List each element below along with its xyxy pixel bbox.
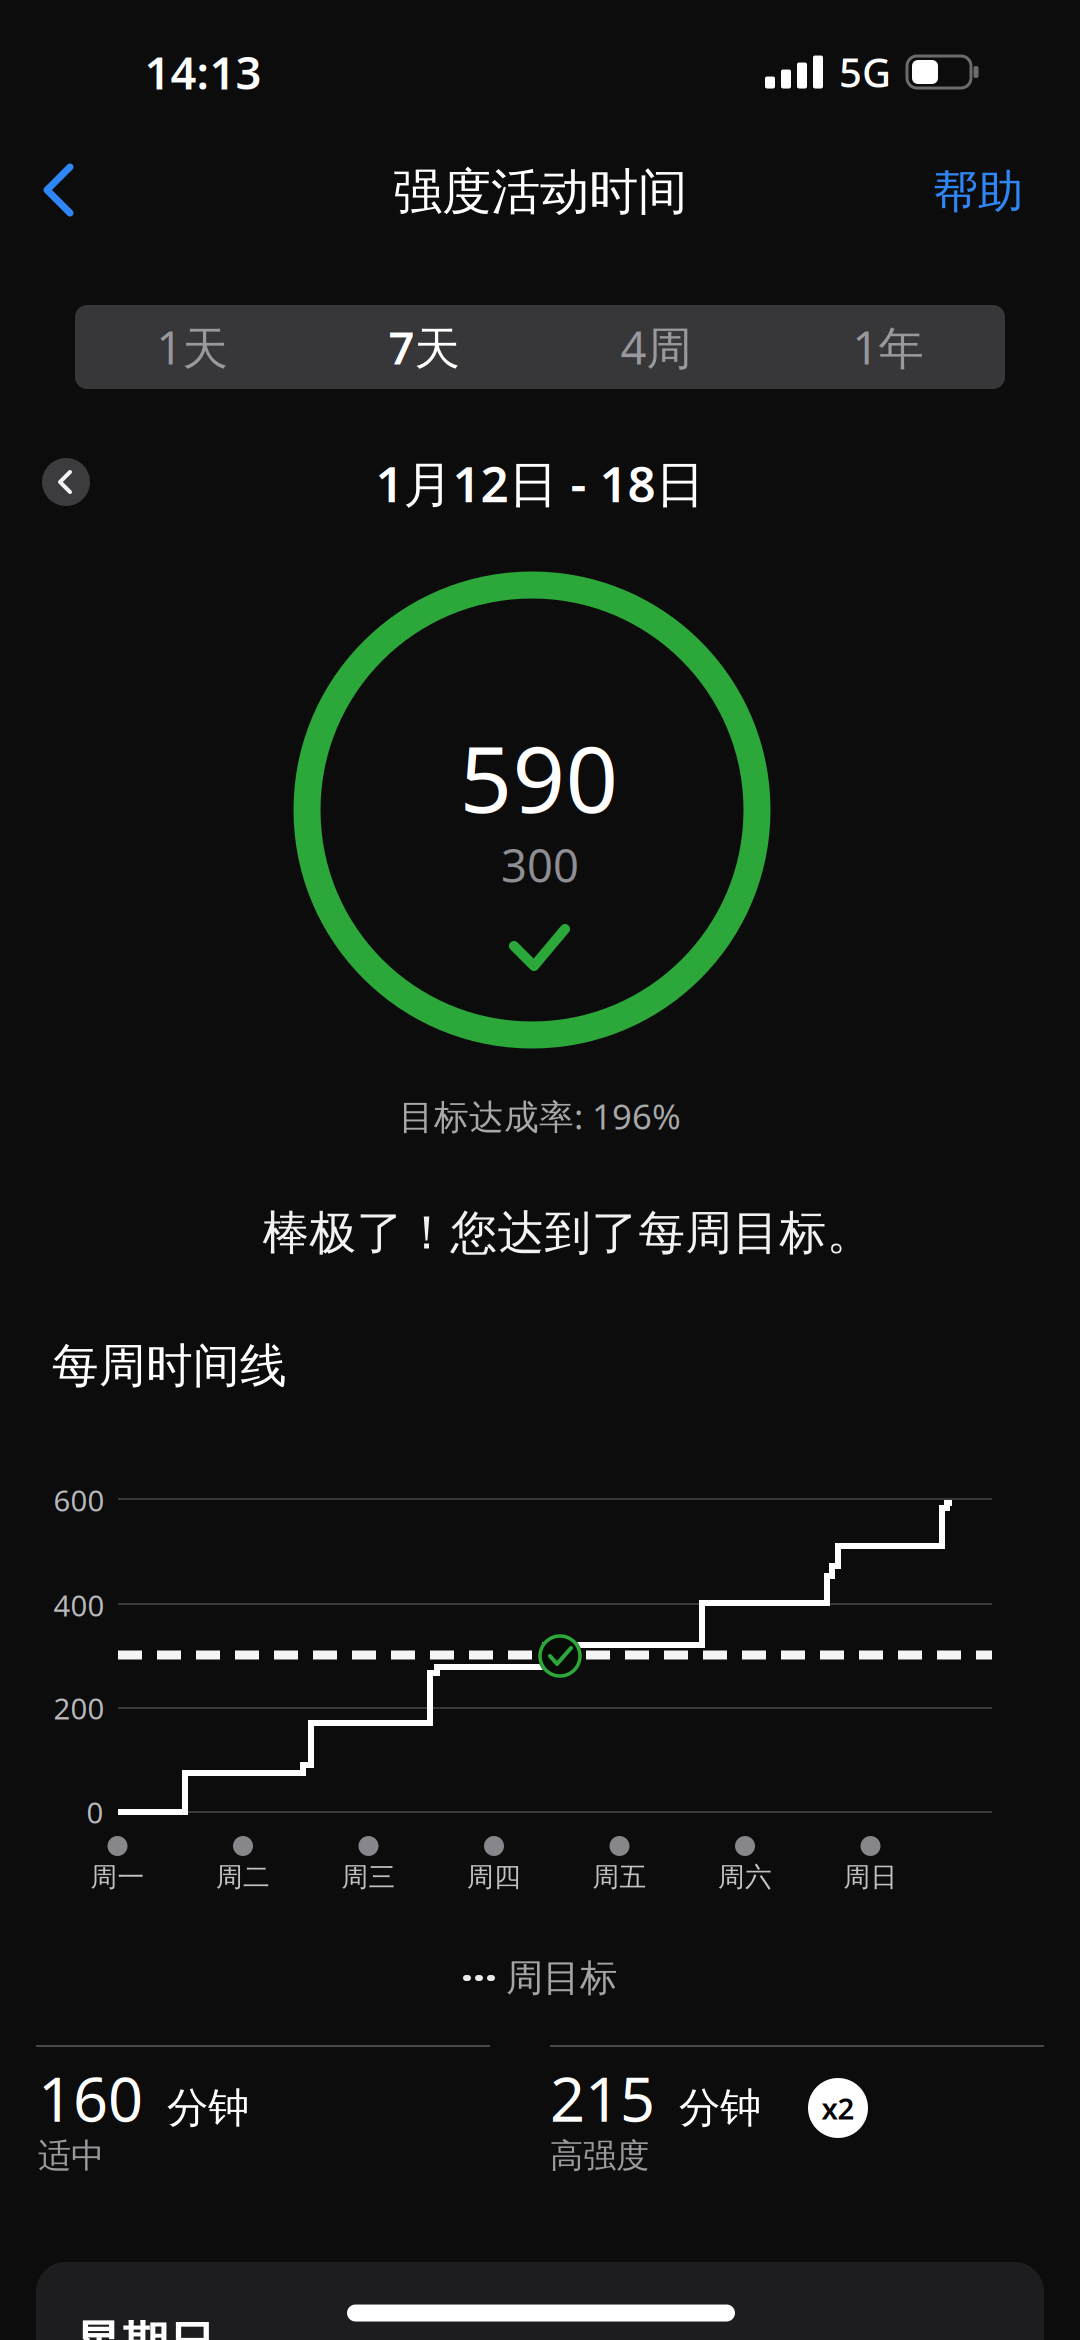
staticText: 帮助 (933, 164, 1023, 220)
staticText: 160 (38, 2057, 143, 2139)
staticText: 14:13 (144, 42, 261, 102)
staticText: 分钟 (679, 2083, 761, 2133)
staticText: 600 (53, 1480, 104, 1519)
staticText: 周一 (90, 1861, 144, 1893)
staticText: 分钟 (167, 2083, 249, 2133)
staticText: 棒极了！您达到了每周目标。 (262, 1204, 873, 1262)
staticText: 4周 (620, 317, 691, 377)
button[interactable]: 1天 (76, 305, 308, 389)
staticText: 1月12日 - 18日 (375, 450, 704, 516)
button[interactable]: 1年 (772, 305, 1004, 389)
staticText: 周二 (216, 1861, 270, 1893)
staticText: x2 (821, 2088, 854, 2127)
staticText: 1年 (852, 317, 923, 377)
staticText: 400 (53, 1585, 104, 1624)
staticText: 200 (53, 1688, 104, 1727)
staticText: 适中 (38, 2135, 104, 2176)
button[interactable]: 上一周 (42, 458, 90, 506)
staticText: 周日 (843, 1861, 897, 1893)
staticText: 300 (501, 835, 579, 895)
staticText: 周目标 (506, 1955, 617, 2001)
button[interactable]: 4周 (540, 305, 772, 389)
button[interactable]: 7天 (308, 305, 540, 389)
button[interactable]: 帮助 (913, 157, 1043, 227)
staticText: 周六 (718, 1861, 772, 1893)
staticText: 周三 (341, 1861, 395, 1893)
staticText: 590 (459, 716, 618, 838)
staticText: 高强度 (550, 2135, 649, 2176)
staticText: 目标达成率: 196% (399, 1093, 681, 1139)
staticText: 周四 (467, 1861, 521, 1893)
staticText: 强度活动时间 (393, 162, 687, 222)
staticText: 1天 (156, 317, 227, 377)
staticText: 周五 (592, 1861, 646, 1893)
staticText: 每周时间线 (52, 1337, 287, 1395)
button[interactable]: 返回 (30, 160, 90, 220)
staticText: 星期日 (74, 2315, 215, 2340)
staticText: 0 (86, 1792, 103, 1831)
staticText: 215 (550, 2057, 655, 2139)
staticText: 5G (839, 45, 891, 98)
staticText: 7天 (388, 317, 459, 377)
